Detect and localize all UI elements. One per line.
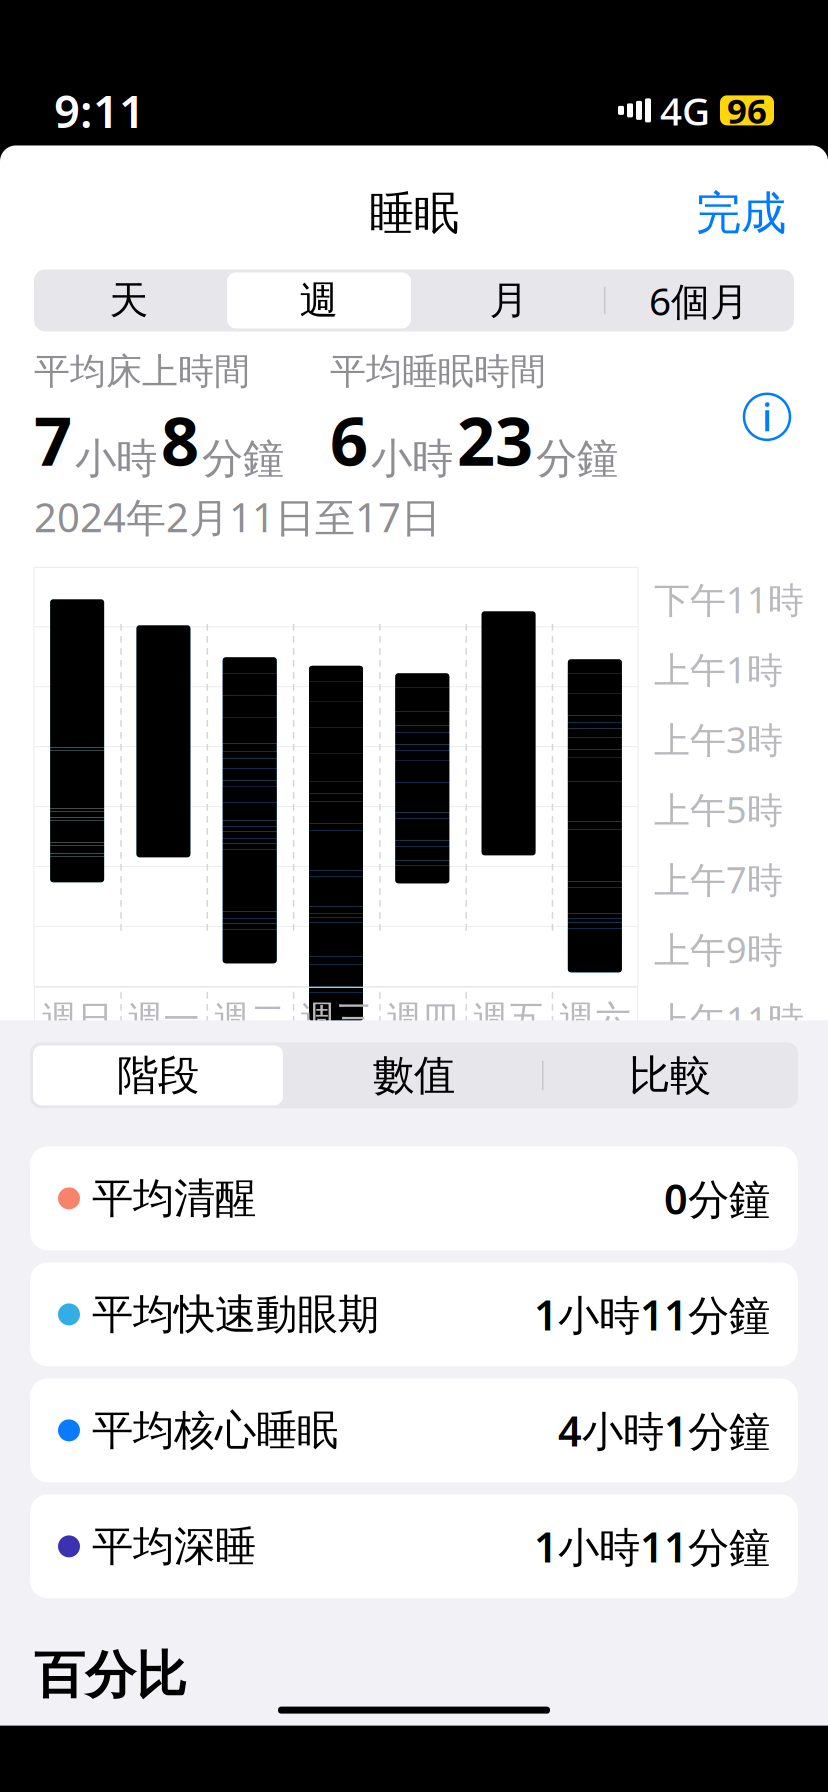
- button[interactable]: 平均核心睡眠: [30, 1378, 798, 1482]
- button[interactable]: 平均清醒: [30, 1146, 798, 1250]
- staticText: 1小時11分鐘: [534, 1519, 770, 1574]
- staticText: 週一: [127, 997, 199, 1041]
- staticText: 9:11: [54, 80, 145, 140]
- staticText: 數值: [373, 1050, 455, 1101]
- button[interactable]: 平均深睡: [30, 1494, 798, 1598]
- staticText: 4G: [660, 85, 710, 136]
- staticText: 23: [457, 396, 533, 484]
- staticText: 週: [299, 277, 338, 324]
- button[interactable]: 天: [34, 269, 224, 331]
- staticText: 小時: [371, 433, 453, 484]
- staticText: 平均核心睡眠: [92, 1405, 338, 1456]
- button[interactable]: 更多資訊: [740, 390, 794, 444]
- staticText: 1小時11分鐘: [534, 1287, 770, 1342]
- staticText: 6個月: [649, 275, 749, 326]
- staticText: 上午9時: [654, 925, 783, 973]
- staticText: 2024年2月11日至17日: [34, 490, 441, 543]
- staticText: 週四: [386, 997, 458, 1041]
- staticText: 分鐘: [536, 433, 618, 484]
- staticText: 平均睡眠時間: [330, 349, 546, 394]
- staticText: 天: [109, 277, 148, 324]
- staticText: 上午1時: [654, 645, 783, 693]
- staticText: 0分鐘: [664, 1171, 770, 1226]
- staticText: 下午11時: [654, 575, 804, 623]
- staticText: 7: [34, 396, 72, 484]
- staticText: 月: [489, 277, 528, 324]
- staticText: 96: [727, 87, 767, 133]
- staticText: 階段: [117, 1050, 199, 1101]
- staticText: 週三: [300, 997, 372, 1041]
- staticText: i: [762, 392, 772, 442]
- staticText: 平均床上時間: [34, 349, 250, 394]
- staticText: 百分比: [34, 1644, 187, 1707]
- button[interactable]: 數值: [286, 1042, 542, 1108]
- staticText: 平均深睡: [92, 1521, 256, 1572]
- staticText: 上午11時: [654, 995, 804, 1043]
- staticText: 週日: [41, 997, 113, 1041]
- staticText: 睡眠: [369, 186, 459, 241]
- staticText: 小時: [75, 433, 157, 484]
- staticText: 週五: [473, 997, 545, 1041]
- staticText: 平均清醒: [92, 1173, 256, 1224]
- staticText: 上午5時: [654, 785, 783, 833]
- button[interactable]: 平均快速動眼期: [30, 1262, 798, 1366]
- staticText: 8: [161, 396, 199, 484]
- staticText: 4小時1分鐘: [558, 1403, 770, 1458]
- staticText: 比較: [629, 1050, 711, 1101]
- button[interactable]: 週: [224, 269, 414, 331]
- staticText: 6: [330, 396, 368, 484]
- button[interactable]: 比較: [542, 1042, 798, 1108]
- staticText: 週二: [214, 997, 286, 1041]
- staticText: 上午7時: [654, 855, 783, 903]
- staticText: 完成: [696, 186, 786, 241]
- staticText: 平均快速動眼期: [92, 1289, 379, 1340]
- button[interactable]: 6個月: [604, 269, 794, 331]
- button[interactable]: 階段: [30, 1042, 286, 1108]
- staticText: 週六: [559, 997, 631, 1041]
- staticText: 分鐘: [202, 433, 284, 484]
- button[interactable]: 月: [414, 269, 604, 331]
- staticText: 上午3時: [654, 715, 783, 763]
- button[interactable]: 完成: [686, 178, 796, 249]
